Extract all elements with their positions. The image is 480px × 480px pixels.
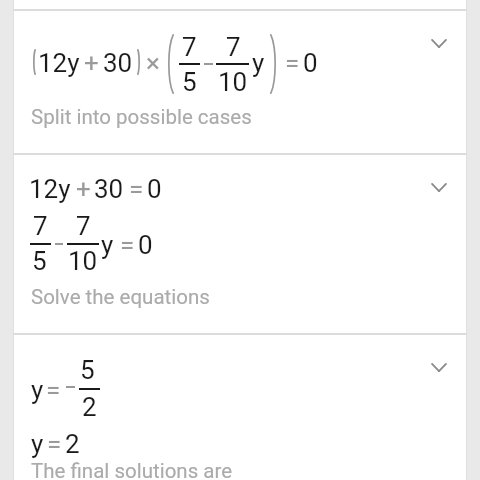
staticText: 10 <box>68 246 98 276</box>
staticText: 5 <box>182 67 197 97</box>
staticText: 0 <box>138 230 153 260</box>
button[interactable]: Expand step <box>417 165 461 209</box>
staticText: 10 <box>218 67 248 97</box>
staticText: 7 <box>182 32 197 62</box>
staticText: 2 <box>82 392 97 422</box>
staticText: Solve the equations <box>31 285 210 309</box>
button[interactable]: 12y <box>13 11 467 153</box>
staticText: 12y <box>29 174 71 204</box>
staticText: + <box>84 48 99 78</box>
staticText: = <box>47 429 62 459</box>
staticText: = <box>120 230 135 260</box>
staticText: 0 <box>147 174 162 204</box>
button[interactable]: 12y <box>13 155 467 333</box>
staticText: = <box>285 48 300 78</box>
staticText: 30 <box>103 48 133 78</box>
staticText: 2 <box>65 429 80 459</box>
staticText: 5 <box>32 246 47 276</box>
staticText: + <box>76 174 91 204</box>
staticText: The final solutions are <box>31 459 233 480</box>
staticText: 7 <box>226 32 241 62</box>
staticText: y <box>31 429 44 459</box>
staticText: × <box>146 48 160 78</box>
staticText: 7 <box>33 211 48 241</box>
staticText: y <box>252 48 265 78</box>
staticText: y <box>31 375 44 405</box>
staticText: 12y <box>38 48 80 78</box>
staticText: 5 <box>80 355 95 385</box>
button[interactable]: y <box>13 335 467 480</box>
staticText: 30 <box>94 174 124 204</box>
staticText: = <box>46 375 61 405</box>
staticText: Split into possible cases <box>31 105 252 129</box>
staticText: y <box>101 230 114 260</box>
staticText: 0 <box>303 48 318 78</box>
staticText: 7 <box>76 211 91 241</box>
button[interactable]: Expand step <box>417 21 461 65</box>
button[interactable]: Expand step <box>417 345 461 389</box>
staticText: = <box>129 174 144 204</box>
